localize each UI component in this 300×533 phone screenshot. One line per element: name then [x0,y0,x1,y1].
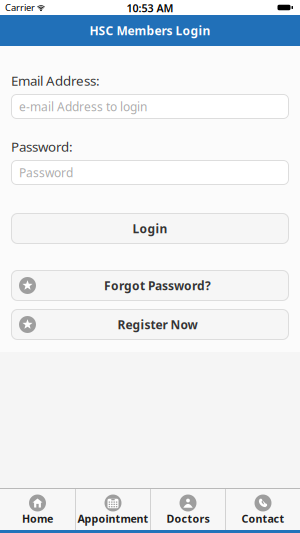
staticText: Contact [241,511,284,526]
staticText: 10:53 AM [126,1,173,15]
staticText: Password: [11,138,73,155]
staticText: Forgot Password? [104,277,211,293]
button[interactable]: Doctors [151,489,225,530]
staticText: e-mail Address to login [19,98,147,114]
button[interactable]: Appointment [76,489,150,530]
staticText: Login [132,220,167,236]
staticText: Register Now [117,316,197,332]
staticText: Email Address: [11,72,100,89]
button[interactable]: Login [0,213,300,244]
button[interactable]: Home [0,489,75,530]
button[interactable]: Contact [226,489,300,530]
staticText: Home [22,511,53,526]
staticText: HSC Members Login [89,22,210,38]
staticText: Carrier [5,1,35,14]
staticText: Appointment [77,511,148,526]
staticText: Password [19,164,73,180]
button[interactable]: Forgot Password? [0,270,300,301]
staticText: Doctors [166,511,209,526]
button[interactable]: Register Now [0,309,300,340]
